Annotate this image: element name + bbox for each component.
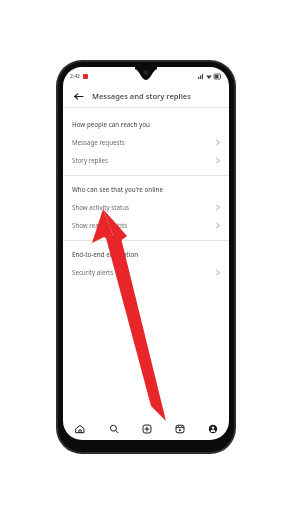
staticText: Messages and story replies [92,91,191,101]
button[interactable]: Show activity status [63,198,229,216]
staticText: Show activity status [72,203,216,211]
button[interactable]: Security alerts [63,263,229,281]
staticText: Message requests [72,138,216,146]
staticText: Security alerts [72,268,216,276]
staticText: Show read receipts [72,221,216,229]
staticText: 2:42 [70,73,80,80]
staticText: Who can see that you're online [72,185,163,193]
button[interactable]: Message requests [63,133,229,151]
button[interactable]: Search [97,418,130,440]
staticText: Story replies [72,156,216,164]
button[interactable]: Story replies [63,151,229,169]
staticText: How people can reach you [72,120,150,128]
button[interactable]: Reels [163,418,196,440]
button[interactable]: Back [70,88,86,104]
button[interactable]: Home [63,418,97,440]
button[interactable]: Show read receipts [63,216,229,234]
button[interactable]: Profile [196,418,229,440]
button[interactable]: Create [130,418,163,440]
staticText: End-to-end encryption [72,250,139,258]
